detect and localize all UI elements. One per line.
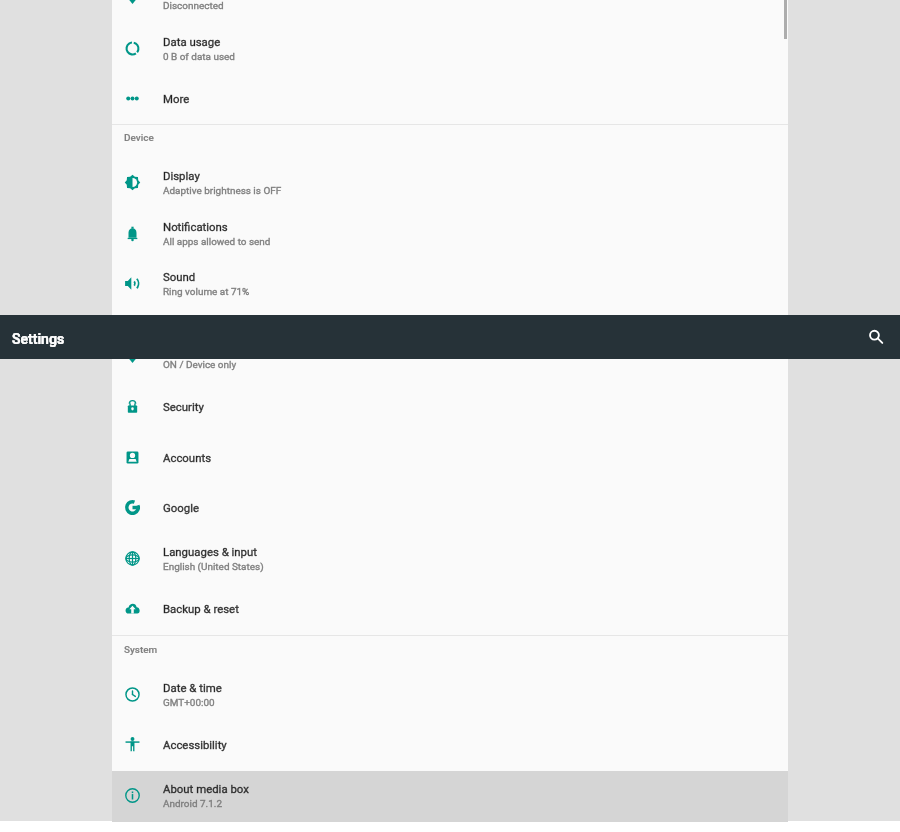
staticText: Adaptive brightness is OFF: [163, 185, 282, 197]
staticText: Sound: [163, 270, 196, 283]
staticText: System: [124, 644, 158, 656]
button[interactable]: Security: [112, 382, 788, 433]
staticText: Backup & reset: [163, 602, 239, 615]
button[interactable]: Accessibility: [112, 720, 788, 771]
staticText: System: [124, 644, 158, 656]
staticText: Languages & input: [163, 545, 258, 558]
staticText: Display: [163, 169, 200, 182]
button[interactable]: About media box: [112, 771, 788, 822]
staticText: 0 B of data used: [163, 51, 235, 63]
button[interactable]: Languages & input: [112, 534, 788, 585]
staticText: Google: [163, 501, 199, 514]
staticText: English (United States): [163, 561, 264, 573]
button[interactable]: More: [112, 74, 788, 125]
staticText: Display: [163, 169, 200, 182]
button[interactable]: Location: [112, 332, 788, 383]
button[interactable]: Display: [112, 158, 788, 209]
button[interactable]: Location: [112, 0, 788, 24]
staticText: Notifications: [163, 220, 228, 233]
staticText: Sound: [163, 270, 196, 283]
button[interactable]: Search: [854, 315, 898, 359]
staticText: All apps allowed to send: [163, 236, 271, 248]
staticText: Backup & reset: [163, 602, 239, 615]
staticText: Android 7.1.2: [163, 798, 222, 810]
staticText: About media box: [163, 782, 249, 795]
staticText: Settings: [12, 331, 65, 348]
staticText: Adaptive brightness is OFF: [163, 185, 282, 197]
staticText: ON / Device only: [163, 359, 237, 371]
staticText: Disconnected: [163, 0, 224, 12]
staticText: Google: [163, 501, 199, 514]
staticText: Disconnected: [163, 0, 224, 12]
staticText: Languages & input: [163, 545, 258, 558]
staticText: GMT+00:00: [163, 697, 215, 709]
staticText: Date & time: [163, 681, 222, 694]
staticText: ON / Device only: [163, 359, 237, 371]
staticText: Security: [163, 400, 204, 413]
button[interactable]: Accounts: [112, 433, 788, 484]
button[interactable]: Notifications: [112, 209, 788, 260]
staticText: Accessibility: [163, 738, 227, 751]
staticText: 0 B of data used: [163, 51, 235, 63]
staticText: Ring volume at 71%: [163, 286, 250, 298]
staticText: Accessibility: [163, 738, 227, 751]
button[interactable]: Data usage: [112, 24, 788, 75]
staticText: Settings: [12, 331, 65, 348]
staticText: Data usage: [163, 35, 221, 48]
staticText: Accounts: [163, 451, 212, 464]
staticText: About media box: [163, 782, 249, 795]
button[interactable]: Sound: [112, 259, 788, 310]
staticText: Device: [124, 132, 154, 144]
staticText: All apps allowed to send: [163, 236, 271, 248]
staticText: Android 7.1.2: [163, 798, 222, 810]
staticText: Date & time: [163, 681, 222, 694]
button[interactable]: Date & time: [112, 670, 788, 721]
staticText: Data usage: [163, 35, 221, 48]
staticText: More: [163, 92, 190, 105]
staticText: Notifications: [163, 220, 228, 233]
staticText: GMT+00:00: [163, 697, 215, 709]
staticText: English (United States): [163, 561, 264, 573]
button[interactable]: Backup & reset: [112, 584, 788, 635]
staticText: Device: [124, 132, 154, 144]
staticText: Accounts: [163, 451, 212, 464]
staticText: Ring volume at 71%: [163, 286, 250, 298]
staticText: Security: [163, 400, 204, 413]
staticText: More: [163, 92, 190, 105]
button[interactable]: Google: [112, 483, 788, 534]
